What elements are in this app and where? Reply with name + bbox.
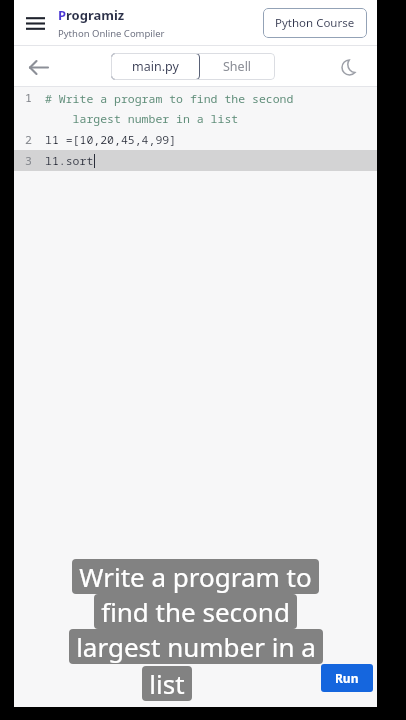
staticText: Python Online Compiler [58, 27, 165, 40]
staticText: 1 [14, 90, 32, 106]
staticText: largest number in a [76, 629, 316, 664]
staticText: l1 =[10,20,45,4,99] [45, 132, 177, 148]
staticText: Programiz [58, 6, 125, 24]
staticText: largest number in a list [45, 111, 239, 127]
staticText: Shell [223, 58, 252, 75]
staticText: 2 [14, 132, 32, 148]
button[interactable]: Python Course [263, 8, 367, 38]
staticText: main.py [132, 58, 179, 75]
button[interactable]: Back [22, 51, 54, 83]
staticText: list [149, 666, 185, 701]
staticText: find the second [101, 594, 290, 629]
button[interactable]: main.py [111, 53, 200, 80]
staticText: Python Course [275, 15, 355, 31]
button[interactable]: Shell [200, 53, 275, 80]
staticText: Write a program to [79, 559, 312, 594]
staticText: l1.sort [45, 153, 94, 169]
button[interactable]: Toggle dark mode [333, 51, 365, 83]
button[interactable]: Menu [18, 6, 52, 40]
staticText: 3 [14, 153, 32, 169]
staticText: Run [335, 670, 359, 686]
staticText: # Write a program to find the second [45, 91, 294, 107]
button[interactable]: Run [321, 664, 373, 692]
